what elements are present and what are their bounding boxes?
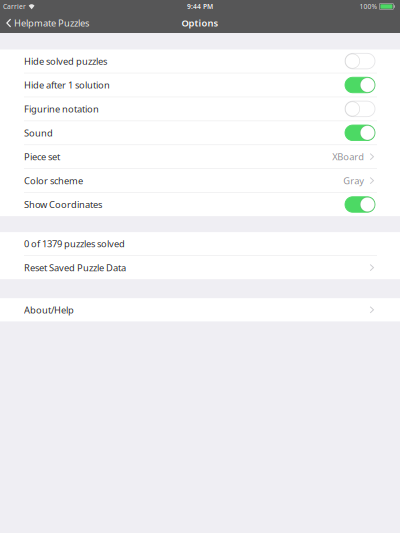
staticText: 0 of 1379 puzzles solved — [24, 237, 125, 250]
button[interactable]: Piece set — [0, 145, 400, 168]
staticText: Reset Saved Puzzle Data — [24, 261, 126, 274]
button[interactable]: Hide after 1 solution — [345, 77, 375, 93]
staticText: Hide solved puzzles — [24, 55, 107, 67]
button[interactable]: About/Help — [0, 298, 400, 321]
staticText: 9:44 PM — [187, 2, 213, 11]
button[interactable]: Helpmate Puzzles — [0, 14, 89, 32]
button[interactable]: Hide solved puzzles — [345, 53, 375, 69]
staticText: Gray — [343, 174, 364, 187]
button[interactable]: Show Coordinates — [345, 197, 375, 212]
staticText: Show Coordinates — [24, 198, 102, 211]
button[interactable]: Figurine notation — [345, 101, 375, 117]
staticText: Hide after 1 solution — [24, 79, 110, 91]
staticText: XBoard — [332, 150, 364, 163]
staticText: Carrier — [3, 2, 26, 11]
staticText: Color scheme — [24, 174, 83, 187]
staticText: Options — [181, 17, 218, 29]
button[interactable]: Reset Saved Puzzle Data — [0, 256, 400, 279]
staticText: Sound — [24, 127, 53, 139]
staticText: 100% — [359, 2, 377, 11]
button[interactable]: 0 of 1379 puzzles solved — [0, 232, 400, 255]
staticText: Helpmate Puzzles — [14, 17, 89, 29]
button[interactable]: Sound — [345, 125, 375, 140]
staticText: Piece set — [24, 150, 60, 163]
staticText: Figurine notation — [24, 103, 99, 115]
staticText: About/Help — [24, 304, 74, 316]
button[interactable]: Color scheme — [0, 169, 400, 192]
